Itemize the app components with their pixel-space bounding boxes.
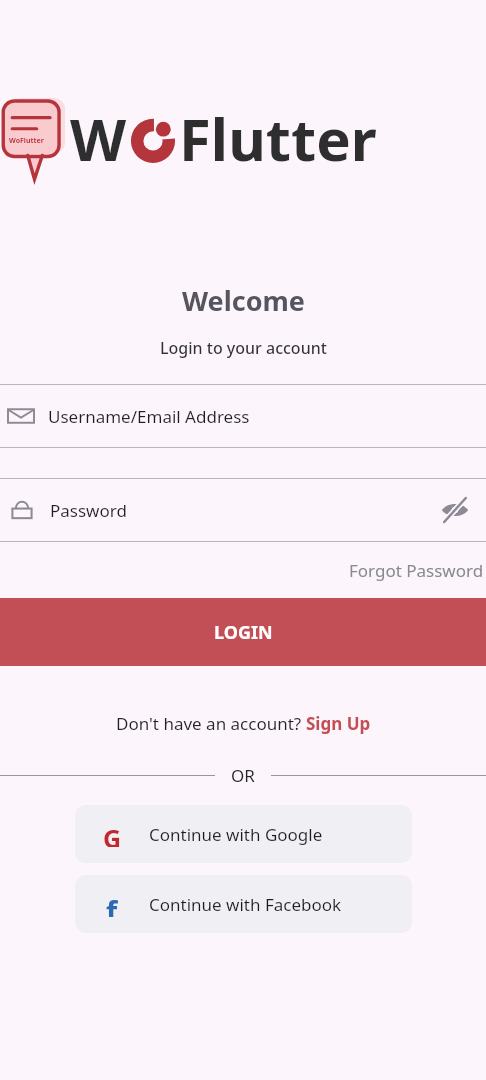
button[interactable]: G (75, 805, 412, 863)
staticText: Login to your account (160, 337, 327, 359)
staticText: Username/Email Address (48, 405, 250, 428)
button[interactable]: f (75, 875, 412, 933)
button[interactable]: Sign Up (306, 712, 371, 735)
staticText: Password (50, 499, 127, 522)
staticText: G (103, 821, 122, 847)
staticText: Don't have an account? (116, 712, 306, 735)
button[interactable]: LOGIN (0, 598, 486, 666)
button[interactable]: Username/Email Address (0, 385, 486, 447)
staticText: Welcome (182, 282, 305, 319)
staticText: f (106, 891, 118, 917)
staticText: Forgot Password (349, 559, 484, 582)
staticText: Flutter (179, 99, 377, 178)
staticText: Continue with Google (149, 823, 323, 846)
button[interactable]: Forgot Password (347, 553, 486, 588)
staticText: W (70, 99, 127, 178)
staticText: OR (231, 764, 255, 786)
staticText: LOGIN (214, 620, 273, 645)
button[interactable]: Password (0, 479, 486, 541)
staticText: WoFlutter (9, 136, 44, 146)
button[interactable]: Show password (438, 493, 472, 527)
staticText: Continue with Facebook (149, 893, 342, 916)
staticText: Sign Up (306, 712, 371, 735)
